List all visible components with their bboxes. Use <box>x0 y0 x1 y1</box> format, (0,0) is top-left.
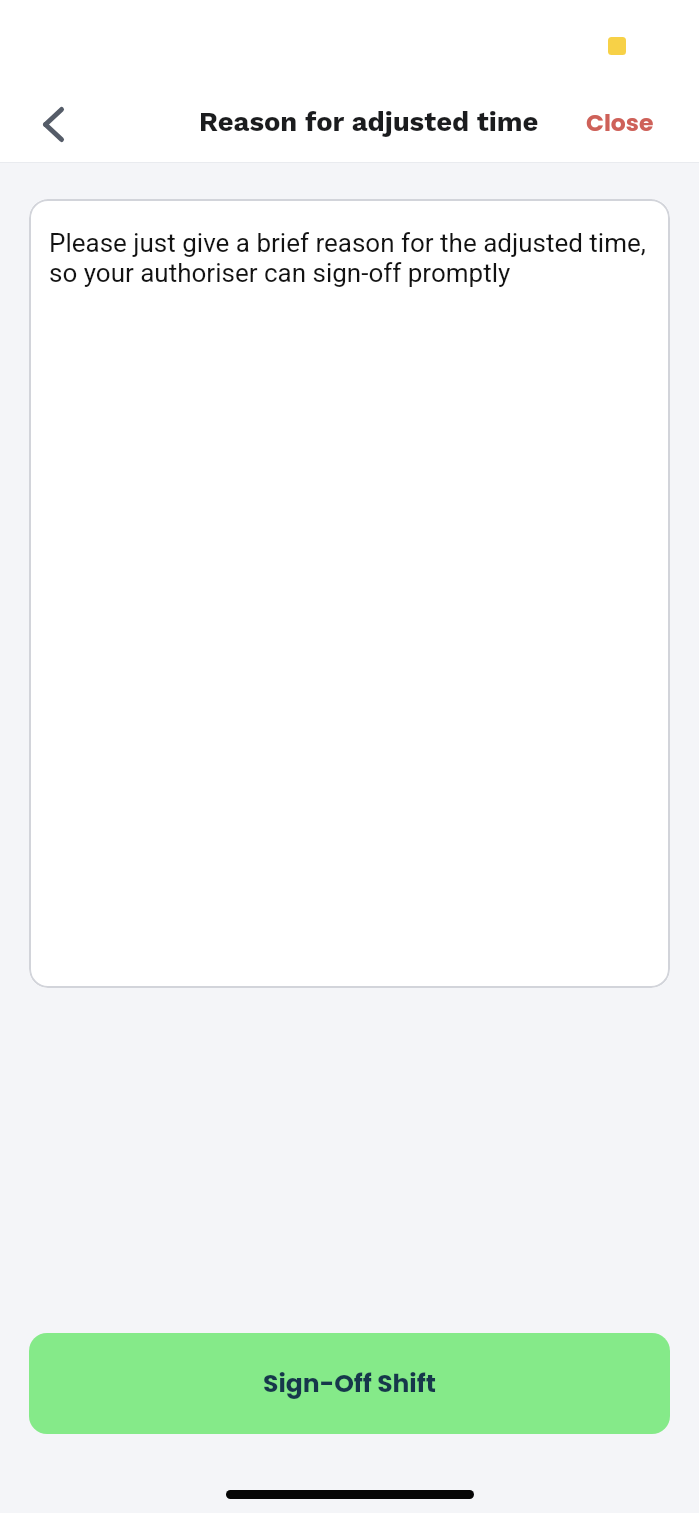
button[interactable]: Sign-Off Shift <box>29 1333 670 1434</box>
button[interactable]: Please just give a brief reason for the … <box>29 199 670 988</box>
staticText: Please just give a brief reason for the … <box>49 228 659 288</box>
button[interactable]: Close <box>573 97 667 148</box>
button[interactable]: Back <box>25 96 81 152</box>
staticText: Close <box>586 106 654 139</box>
staticText: Reason for adjusted time <box>199 106 539 138</box>
staticText: Sign-Off Shift <box>263 1366 436 1401</box>
